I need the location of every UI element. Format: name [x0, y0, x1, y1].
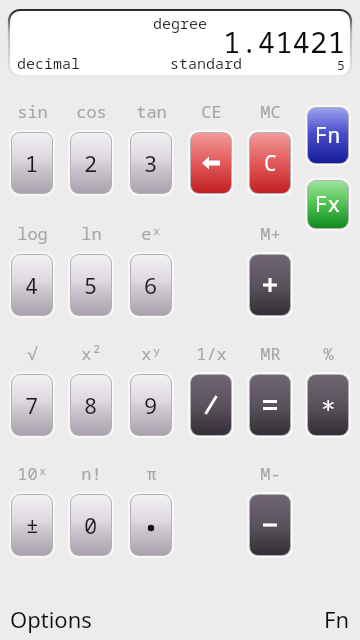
button[interactable]: Divide [188, 372, 234, 438]
button[interactable]: Fn [324, 604, 350, 634]
staticText: CE [201, 100, 222, 123]
staticText: Fn [324, 604, 350, 634]
staticText: ∗ [321, 391, 336, 419]
button[interactable]: 4 [9, 252, 55, 318]
staticText: ln [81, 222, 102, 245]
staticText: C [264, 149, 277, 178]
button[interactable]: 0 [68, 492, 114, 558]
staticText: eˣ [141, 222, 162, 245]
staticText: decimal [17, 53, 81, 73]
button[interactable]: 2 [68, 130, 114, 196]
button[interactable]: 3 [128, 130, 174, 196]
staticText: tan [136, 100, 167, 123]
button[interactable]: Multiply [305, 372, 351, 438]
staticText: 7 [25, 390, 39, 420]
button[interactable]: C [247, 130, 293, 196]
button[interactable]: 5 [68, 252, 114, 318]
staticText: cos [76, 100, 107, 123]
staticText: sin [17, 100, 48, 123]
button[interactable]: 7 [9, 372, 55, 438]
staticText: degree [153, 13, 208, 33]
staticText: 1 [25, 148, 39, 178]
staticText: 5 [84, 270, 98, 300]
button[interactable]: 9 [128, 372, 174, 438]
staticText: 8 [84, 390, 98, 420]
button[interactable]: Options [10, 604, 92, 634]
staticText: log [17, 222, 48, 245]
staticText: 9 [144, 390, 158, 420]
staticText: Fx [315, 190, 341, 219]
staticText: 3 [144, 148, 158, 178]
staticText: x² [81, 342, 102, 365]
button[interactable]: 1 [9, 130, 55, 196]
staticText: 0 [84, 510, 98, 540]
button[interactable]: 6 [128, 252, 174, 318]
staticText: π [146, 462, 157, 485]
staticText: 4 [25, 270, 39, 300]
staticText: 1.41421 [223, 22, 345, 61]
button[interactable]: Fn [305, 105, 351, 166]
staticText: standard [170, 53, 243, 73]
staticText: Fn [315, 121, 341, 150]
button[interactable]: Decimal point [128, 492, 174, 558]
button[interactable]: ± [9, 492, 55, 558]
button[interactable]: Plus [247, 252, 293, 318]
staticText: 2 [84, 148, 98, 178]
staticText: 6 [144, 270, 158, 300]
staticText: Options [10, 604, 92, 634]
staticText: MR [260, 342, 281, 365]
staticText: xʸ [141, 342, 162, 365]
staticText: M- [260, 462, 281, 485]
staticText: M+ [260, 222, 281, 245]
staticText: n! [81, 462, 102, 485]
button[interactable]: Backspace [188, 130, 234, 196]
staticText: ± [26, 511, 39, 540]
staticText: 1/x [196, 342, 227, 365]
staticText: √ [27, 342, 38, 365]
staticText: 10ˣ [17, 462, 48, 485]
button[interactable]: 8 [68, 372, 114, 438]
staticText: MC [260, 100, 281, 123]
staticText: 5 [337, 56, 345, 74]
button[interactable]: Fx [305, 178, 351, 231]
button[interactable]: Minus [247, 492, 293, 558]
button[interactable]: Equals [247, 372, 293, 438]
staticText: % [323, 342, 334, 365]
